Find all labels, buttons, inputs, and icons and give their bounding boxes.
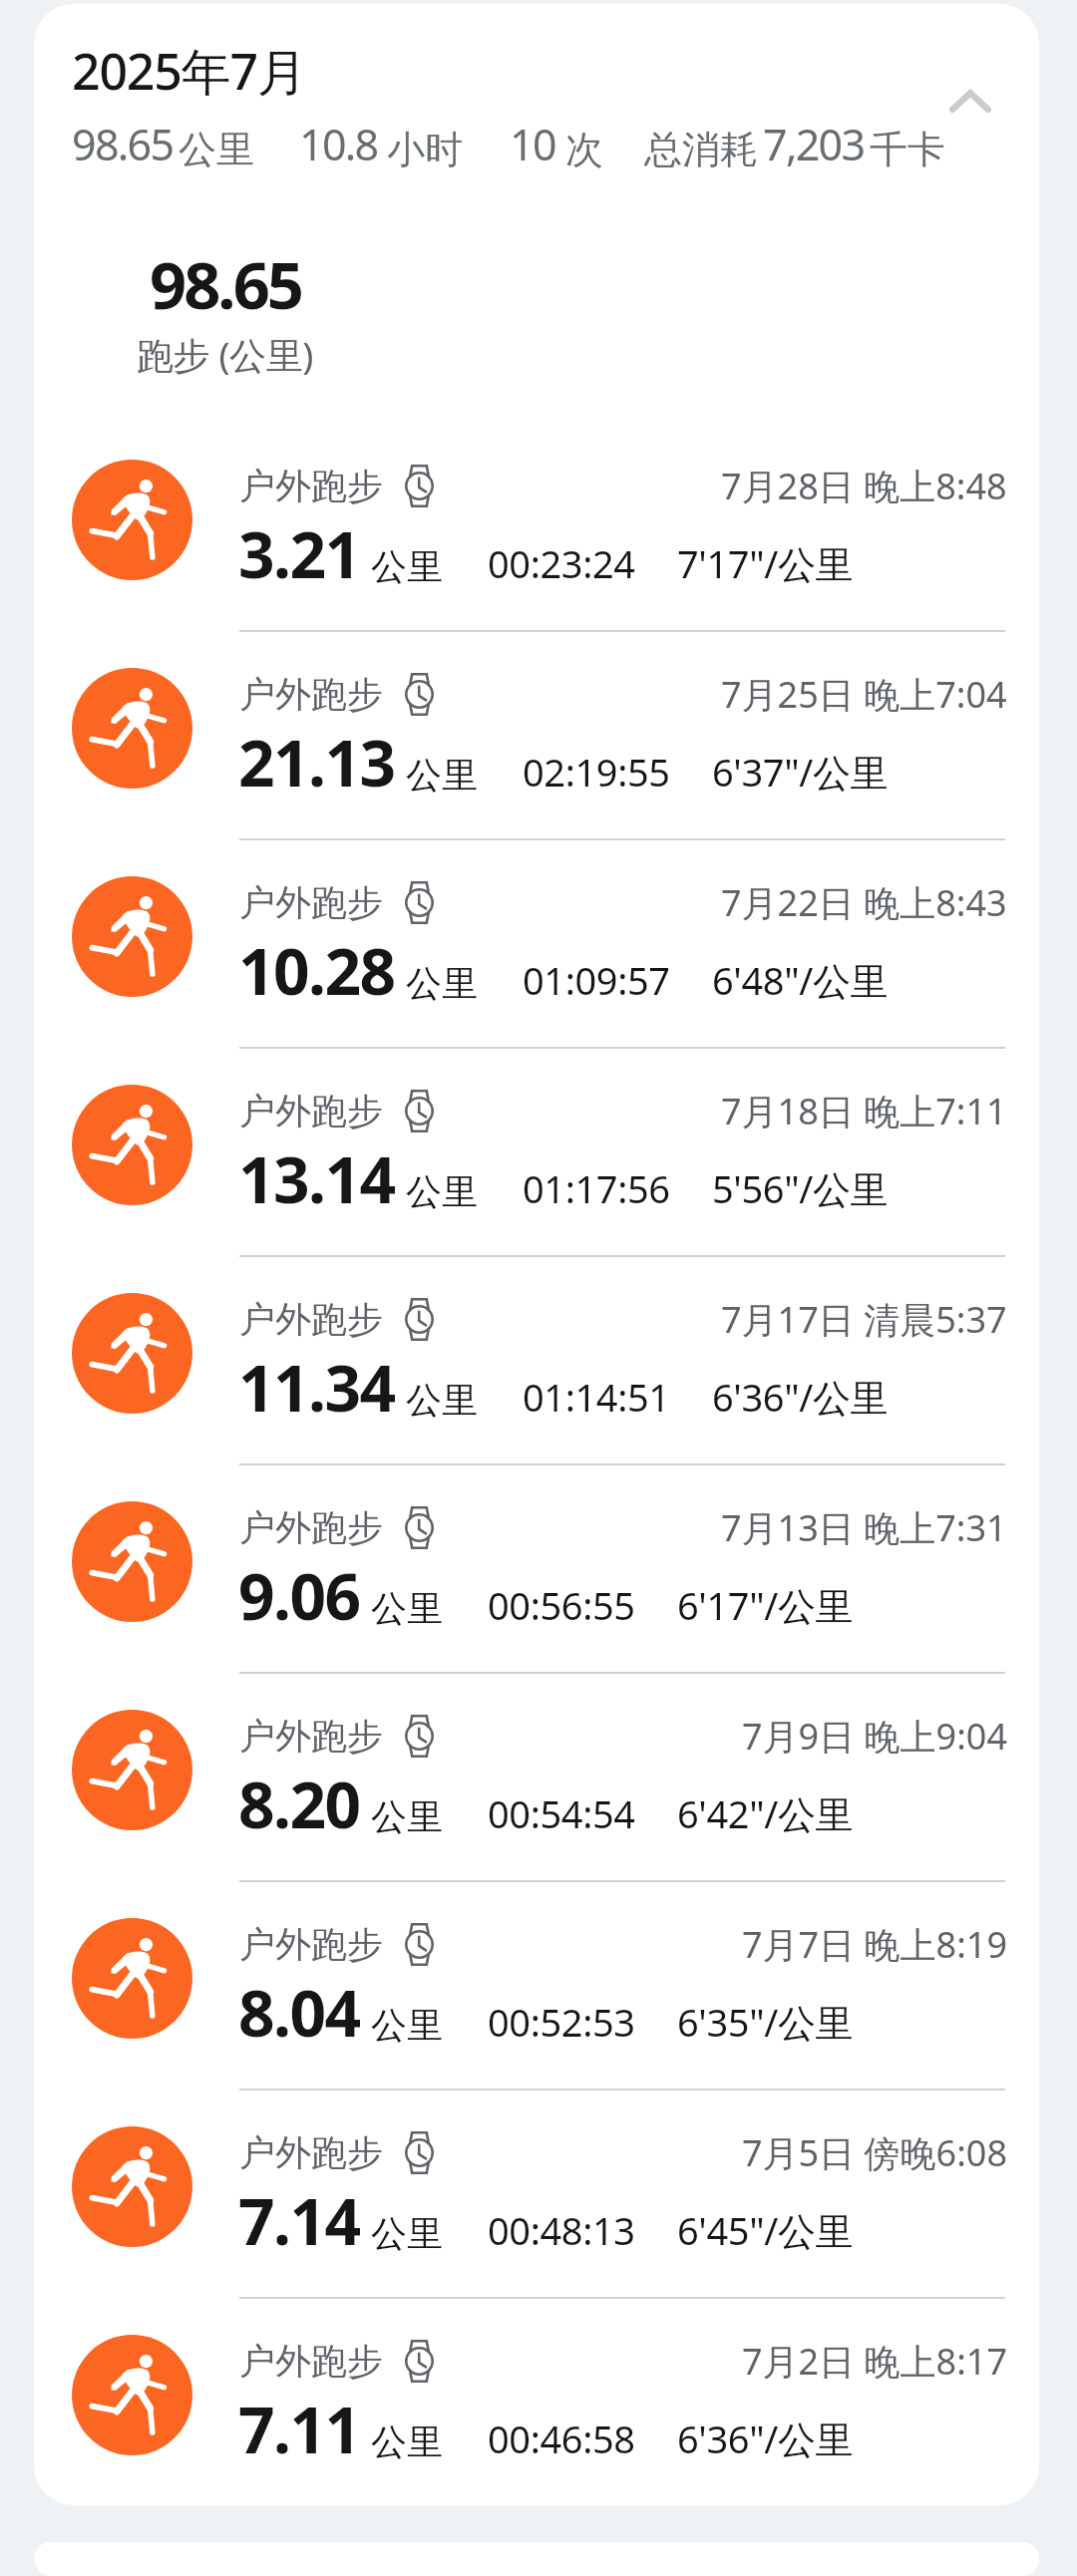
staticText: 00:23:24 bbox=[488, 537, 635, 589]
staticText: 户外跑步 bbox=[239, 464, 383, 508]
staticText: 6'35"/公里 bbox=[677, 1996, 854, 2048]
staticText: 户外跑步 bbox=[239, 2339, 383, 2384]
staticText: 公里 bbox=[371, 1586, 443, 1631]
staticText: 户外跑步 bbox=[239, 1714, 383, 1759]
staticText: 00:54:54 bbox=[488, 1787, 635, 1839]
button[interactable]: 户外跑步 bbox=[34, 1463, 1039, 1672]
staticText: 7'17"/公里 bbox=[677, 537, 854, 589]
staticText: 8.04 bbox=[238, 1969, 360, 2056]
staticText: 01:09:57 bbox=[523, 954, 670, 1006]
staticText: 户外跑步 bbox=[239, 672, 383, 717]
staticText: 公里 bbox=[406, 1378, 478, 1423]
staticText: 02:19:55 bbox=[523, 746, 670, 798]
staticText: 01:14:51 bbox=[523, 1371, 670, 1423]
staticText: 7月5日 傍晚6:08 bbox=[742, 2128, 1007, 2177]
staticText: 户外跑步 bbox=[239, 1297, 383, 1342]
staticText: 公里 bbox=[371, 1794, 443, 1839]
staticText: 7月22日 晚上8:43 bbox=[721, 878, 1007, 927]
staticText: 10.28 bbox=[238, 927, 395, 1014]
button[interactable]: 户外跑步 bbox=[34, 1880, 1039, 2089]
staticText: 7,203 bbox=[763, 115, 865, 173]
staticText: 公里 bbox=[371, 2419, 443, 2464]
staticText: 10 bbox=[510, 115, 555, 173]
staticText: 11.34 bbox=[238, 1344, 395, 1431]
staticText: 公里 bbox=[406, 1169, 478, 1214]
button[interactable]: 户外跑步 bbox=[34, 630, 1039, 838]
staticText: 00:52:53 bbox=[488, 1996, 635, 2048]
staticText: 次 bbox=[565, 126, 603, 173]
staticText: 户外跑步 bbox=[239, 1922, 383, 1967]
staticText: 总消耗 bbox=[644, 126, 758, 173]
staticText: 6'45"/公里 bbox=[677, 2204, 854, 2256]
button[interactable]: 户外跑步 bbox=[34, 1672, 1039, 1880]
staticText: 00:56:55 bbox=[488, 1579, 635, 1631]
staticText: 3.21 bbox=[238, 510, 360, 597]
staticText: 7月7日 晚上8:19 bbox=[742, 1920, 1007, 1969]
staticText: 7.14 bbox=[238, 2177, 360, 2264]
staticText: 7.11 bbox=[238, 2386, 360, 2472]
staticText: 7月28日 晚上8:48 bbox=[721, 462, 1007, 510]
staticText: 00:46:58 bbox=[488, 2413, 635, 2464]
staticText: 6'36"/公里 bbox=[677, 2413, 854, 2464]
staticText: 公里 bbox=[371, 2211, 443, 2256]
staticText: 7月17日 清晨5:37 bbox=[721, 1295, 1007, 1344]
staticText: 7月13日 晚上7:31 bbox=[721, 1503, 1007, 1552]
staticText: 6'37"/公里 bbox=[712, 746, 889, 798]
staticText: 6'48"/公里 bbox=[712, 954, 889, 1006]
staticText: 公里 bbox=[179, 126, 254, 173]
staticText: 公里 bbox=[371, 2003, 443, 2048]
button[interactable]: 户外跑步 bbox=[34, 2089, 1039, 2297]
staticText: 跑步 (公里) bbox=[137, 329, 314, 380]
staticText: 8.20 bbox=[238, 1761, 360, 1847]
button[interactable]: 户外跑步 bbox=[34, 1255, 1039, 1463]
staticText: 00:48:13 bbox=[488, 2204, 635, 2256]
staticText: 98.65 bbox=[72, 115, 174, 173]
staticText: 01:17:56 bbox=[523, 1162, 670, 1214]
staticText: 千卡 bbox=[870, 126, 945, 173]
button[interactable]: 户外跑步 bbox=[34, 2297, 1039, 2505]
staticText: 6'36"/公里 bbox=[712, 1371, 889, 1423]
staticText: 2025年7月 bbox=[72, 37, 306, 105]
staticText: 小时 bbox=[387, 126, 463, 173]
staticText: 7月9日 晚上9:04 bbox=[742, 1712, 1007, 1761]
staticText: 户外跑步 bbox=[239, 1089, 383, 1133]
staticText: 户外跑步 bbox=[239, 1505, 383, 1550]
staticText: 10.8 bbox=[299, 115, 378, 173]
staticText: 7月2日 晚上8:17 bbox=[742, 2337, 1007, 2386]
staticText: 公里 bbox=[406, 961, 478, 1006]
staticText: 9.06 bbox=[238, 1552, 360, 1639]
staticText: 户外跑步 bbox=[239, 2130, 383, 2175]
staticText: 5'56"/公里 bbox=[712, 1162, 889, 1214]
staticText: 98.65 bbox=[150, 240, 301, 329]
button[interactable]: 户外跑步 bbox=[34, 1047, 1039, 1255]
button[interactable]: Collapse bbox=[925, 56, 1015, 146]
staticText: 6'42"/公里 bbox=[677, 1787, 854, 1839]
staticText: 户外跑步 bbox=[239, 880, 383, 925]
staticText: 6'17"/公里 bbox=[677, 1579, 854, 1631]
staticText: 7月18日 晚上7:11 bbox=[721, 1087, 1007, 1135]
staticText: 7月25日 晚上7:04 bbox=[721, 670, 1007, 719]
staticText: 21.13 bbox=[238, 719, 395, 805]
button[interactable]: 户外跑步 bbox=[34, 422, 1039, 630]
button[interactable]: 户外跑步 bbox=[34, 838, 1039, 1047]
staticText: 公里 bbox=[406, 753, 478, 798]
staticText: 13.14 bbox=[238, 1135, 395, 1222]
staticText: 公里 bbox=[371, 544, 443, 589]
